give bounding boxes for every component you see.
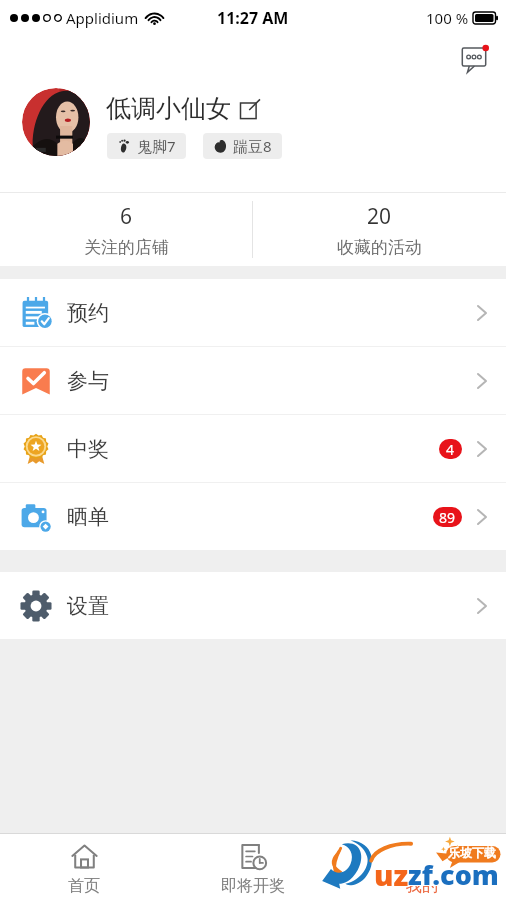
- button[interactable]: 我的: [337, 834, 506, 900]
- staticText: Applidium: [66, 8, 139, 28]
- staticText: 收藏的活动: [337, 237, 422, 258]
- staticText: 踹豆8: [233, 136, 272, 156]
- staticText: 11:27 AM: [217, 7, 289, 29]
- staticText: zf.com: [408, 856, 499, 893]
- button[interactable]: 踹豆8: [203, 133, 282, 159]
- button[interactable]: 设置: [0, 572, 506, 639]
- staticText: 乐坡下载: [448, 845, 496, 860]
- staticText: 首页: [68, 876, 100, 896]
- button[interactable]: 晒单: [0, 483, 506, 550]
- button[interactable]: Edit profile: [240, 99, 260, 119]
- staticText: 设置: [67, 593, 109, 619]
- staticText: 89: [439, 508, 456, 527]
- button[interactable]: 首页: [0, 834, 168, 900]
- button[interactable]: 鬼脚7: [107, 133, 186, 159]
- staticText: 中奖: [67, 436, 109, 462]
- staticText: 鬼脚7: [137, 136, 176, 156]
- staticText: 即将开奖: [221, 876, 285, 896]
- button[interactable]: 即将开奖: [168, 834, 337, 900]
- staticText: 我的: [406, 876, 438, 896]
- staticText: uz: [374, 855, 409, 894]
- staticText: 关注的店铺: [84, 237, 169, 258]
- staticText: 晒单: [67, 504, 109, 530]
- staticText: 参与: [67, 368, 109, 394]
- button[interactable]: 20: [253, 193, 506, 266]
- staticText: 低调小仙女: [106, 93, 231, 124]
- button[interactable]: 参与: [0, 347, 506, 414]
- staticText: 20: [367, 202, 392, 231]
- button[interactable]: Messages: [459, 42, 489, 72]
- staticText: 100 %: [426, 8, 469, 28]
- button[interactable]: 中奖: [0, 415, 506, 482]
- staticText: 预约: [67, 300, 109, 326]
- staticText: 4: [446, 440, 455, 459]
- staticText: 6: [120, 202, 133, 231]
- button[interactable]: Avatar: [22, 88, 90, 156]
- button[interactable]: 预约: [0, 279, 506, 346]
- button[interactable]: 6: [0, 193, 252, 266]
